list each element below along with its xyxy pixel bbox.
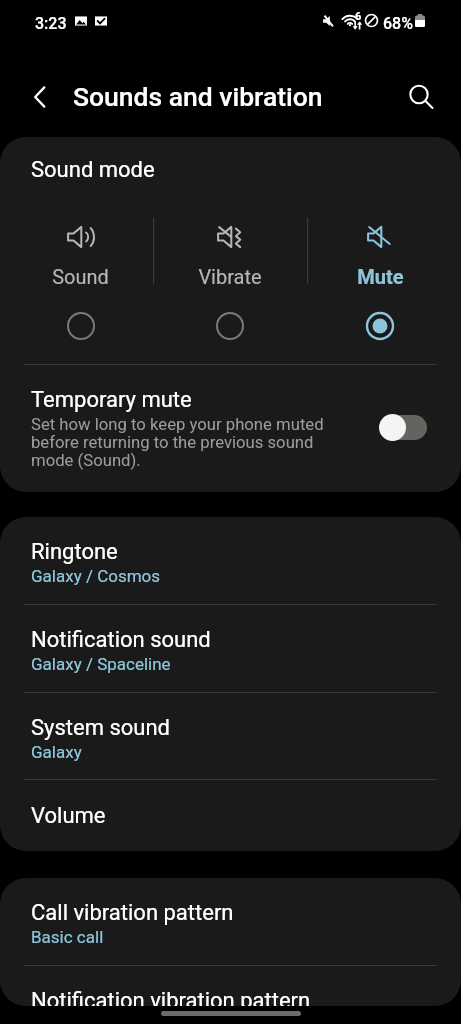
staticText: Galaxy bbox=[31, 742, 82, 762]
staticText: Vibrate bbox=[198, 265, 262, 288]
button[interactable]: Back bbox=[22, 79, 58, 115]
staticText: Notification vibration pattern bbox=[31, 988, 311, 1006]
staticText: Notification sound bbox=[31, 627, 211, 653]
button[interactable]: Call vibration pattern bbox=[0, 878, 461, 965]
button[interactable]: Mute bbox=[305, 217, 455, 364]
button[interactable]: Search bbox=[401, 77, 441, 117]
staticText: System sound bbox=[31, 715, 171, 741]
staticText: 6 bbox=[355, 10, 362, 23]
staticText: Sound mode bbox=[31, 157, 155, 183]
staticText: Galaxy / Cosmos bbox=[31, 566, 161, 586]
staticText: Volume bbox=[31, 803, 106, 829]
staticText: 3:23 bbox=[35, 14, 67, 33]
staticText: Sounds and vibration bbox=[73, 81, 323, 112]
button[interactable]: Notification vibration pattern bbox=[0, 966, 461, 1006]
staticText: 68% bbox=[383, 14, 413, 33]
button[interactable]: Notification sound bbox=[0, 605, 461, 692]
button[interactable]: Volume bbox=[0, 780, 461, 851]
button[interactable]: Temporary mute bbox=[379, 414, 427, 441]
button[interactable]: Ringtone bbox=[0, 517, 461, 604]
button[interactable]: Sound bbox=[6, 217, 155, 364]
button[interactable]: Temporary mute bbox=[0, 365, 461, 492]
staticText: Set how long to keep your phone muted be… bbox=[31, 415, 343, 470]
button[interactable]: Vibrate bbox=[155, 217, 305, 364]
staticText: Sound bbox=[52, 265, 109, 288]
staticText: Galaxy / Spaceline bbox=[31, 654, 171, 674]
staticText: Temporary mute bbox=[31, 387, 192, 413]
staticText: Call vibration pattern bbox=[31, 900, 234, 926]
staticText: Mute bbox=[357, 265, 404, 288]
staticText: Basic call bbox=[31, 927, 104, 947]
staticText: Ringtone bbox=[31, 539, 118, 565]
button[interactable]: System sound bbox=[0, 693, 461, 779]
